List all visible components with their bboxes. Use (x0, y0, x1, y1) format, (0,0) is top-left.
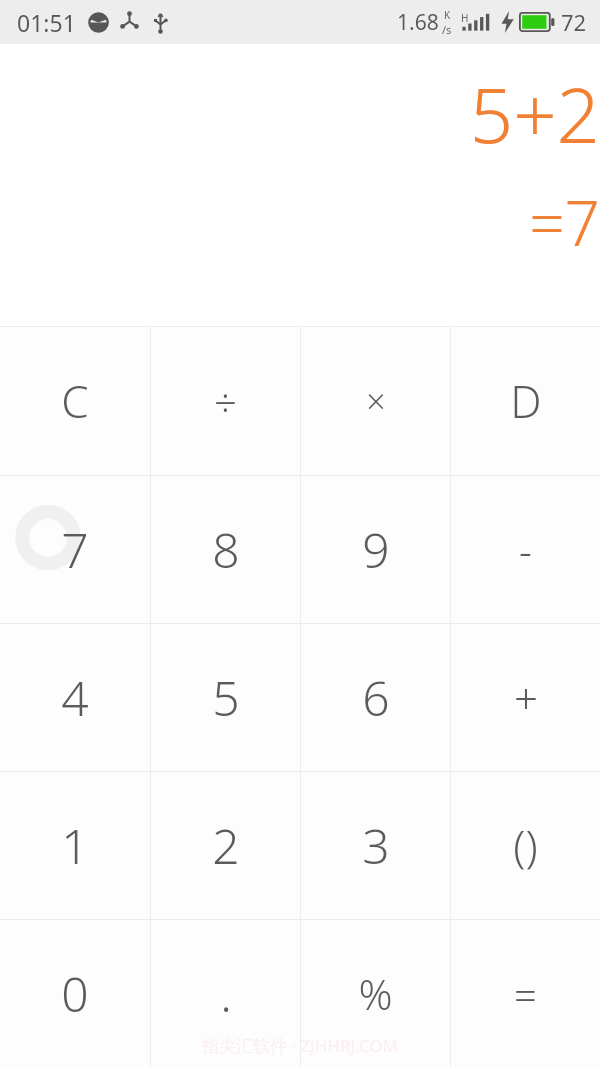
staticText: 指尖汇软件 · ZJHHRJ.COM (202, 1034, 398, 1057)
staticText: 9 (362, 517, 390, 582)
staticText: /s (442, 22, 452, 37)
staticText: = (514, 967, 537, 1021)
button[interactable]: D (451, 327, 600, 475)
button[interactable]: 7 (0, 476, 150, 623)
staticText: 8 (212, 517, 240, 582)
staticText: C (61, 371, 89, 431)
button[interactable]: ÷ (151, 327, 300, 475)
staticText: 5+2 (469, 62, 600, 166)
button[interactable]: 5 (151, 624, 300, 771)
staticText: D (510, 371, 542, 431)
staticText: 5 (212, 665, 240, 730)
staticText: 1.68 (397, 8, 439, 37)
button[interactable]: - (451, 476, 600, 623)
staticText: 2 (212, 813, 240, 878)
staticText: 0 (61, 961, 89, 1026)
button[interactable]: () (451, 772, 600, 919)
staticText: 7 (61, 517, 89, 582)
button[interactable]: 2 (151, 772, 300, 919)
staticText: =7 (529, 180, 600, 264)
staticText: ÷ (214, 374, 237, 428)
button[interactable]: 4 (0, 624, 150, 771)
button[interactable]: 6 (301, 624, 450, 771)
staticText: × (366, 378, 386, 424)
staticText: () (513, 816, 538, 876)
button[interactable]: 0 (0, 920, 150, 1067)
staticText: . (220, 961, 232, 1026)
staticText: 4 (61, 665, 89, 730)
staticText: - (519, 523, 532, 577)
staticText: 72 (561, 7, 587, 37)
button[interactable]: 9 (301, 476, 450, 623)
staticText: H (461, 11, 469, 25)
staticText: 6 (362, 665, 390, 730)
staticText: 01:51 (17, 7, 76, 38)
button[interactable]: 8 (151, 476, 300, 623)
staticText: K (444, 8, 451, 22)
staticText: 3 (362, 813, 390, 878)
button[interactable]: % (301, 920, 450, 1067)
staticText: % (358, 965, 393, 1022)
button[interactable]: = (451, 920, 600, 1067)
button[interactable]: C (0, 327, 150, 475)
button[interactable]: 3 (301, 772, 450, 919)
button[interactable]: 1 (0, 772, 150, 919)
button[interactable]: × (301, 327, 450, 475)
button[interactable]: . (151, 920, 300, 1067)
staticText: + (514, 669, 538, 726)
button[interactable]: + (451, 624, 600, 771)
staticText: 1 (61, 813, 89, 878)
